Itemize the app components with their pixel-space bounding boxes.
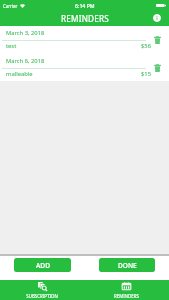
button[interactable]: DONE [99, 258, 155, 272]
button[interactable]: March 6, 2018 [0, 54, 169, 81]
staticText: $56 [141, 42, 151, 50]
staticText: Carrier [3, 3, 18, 9]
button[interactable]: ADD [14, 258, 71, 272]
staticText: DONE [118, 261, 137, 270]
staticText: March 3, 2018 [6, 29, 45, 37]
staticText: test [6, 42, 17, 50]
button[interactable]: March 3, 2018 [0, 26, 169, 54]
staticText: March 6, 2018 [6, 57, 45, 65]
staticText: 6:14 PM [75, 2, 95, 9]
staticText: REMINDERS [114, 293, 139, 299]
button[interactable]: SUBSCRIPTION [0, 280, 84, 300]
button[interactable]: Info [153, 14, 161, 22]
button[interactable]: Delete [154, 36, 161, 44]
button[interactable]: Delete [154, 64, 161, 72]
staticText: ADD [36, 261, 50, 270]
staticText: SUBSCRIPTION [26, 293, 58, 299]
staticText: $15 [141, 70, 151, 78]
staticText: malleable [6, 70, 33, 78]
button[interactable]: REMINDERS [84, 280, 169, 300]
staticText: REMINDERS [61, 13, 109, 24]
